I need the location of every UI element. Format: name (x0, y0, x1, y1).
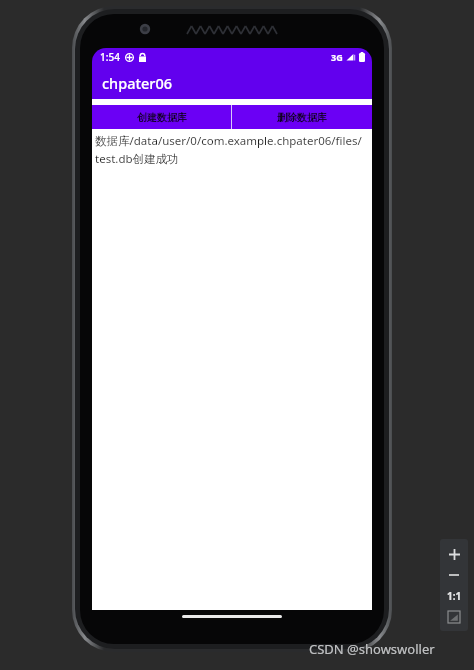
staticText: 1:1 (447, 589, 462, 603)
button[interactable]: Fit to screen (441, 606, 467, 627)
button[interactable]: Zoom in (441, 543, 467, 565)
staticText: 创建数据库 (137, 111, 187, 124)
button[interactable]: 创建数据库 (92, 105, 231, 129)
button[interactable]: Zoom out (441, 565, 467, 585)
button[interactable]: Actual size (441, 585, 467, 606)
staticText: 3G (331, 51, 343, 63)
staticText: CSDN @showswoller (309, 640, 435, 658)
staticText: 1:54 (100, 50, 120, 64)
button[interactable]: 删除数据库 (232, 105, 372, 129)
staticText: 删除数据库 (277, 111, 327, 124)
staticText: chpater06 (102, 73, 173, 93)
staticText: 数据库/data/user/0/com.example.chpater06/fi… (95, 133, 371, 167)
